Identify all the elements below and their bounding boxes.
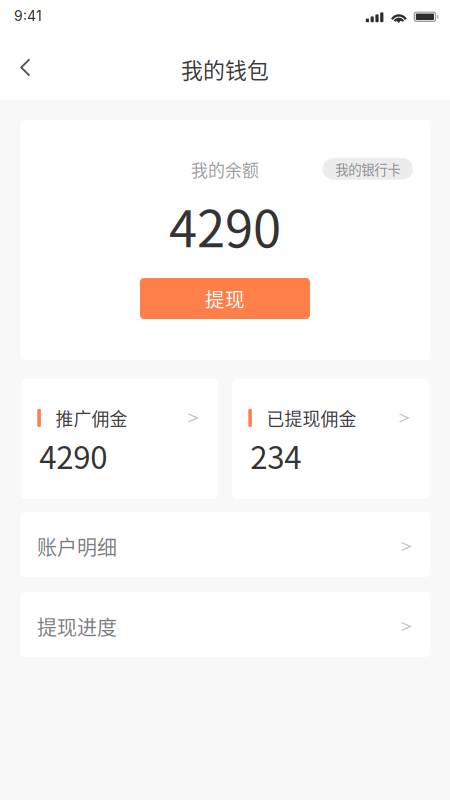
button[interactable]: 提现 bbox=[140, 278, 310, 319]
button[interactable]: 推广佣金 bbox=[21, 379, 218, 499]
button[interactable]: 我的银行卡 bbox=[322, 158, 413, 180]
button[interactable]: Back bbox=[0, 42, 51, 99]
staticText: 提现 bbox=[205, 284, 245, 313]
staticText: 234 bbox=[250, 433, 301, 478]
staticText: 我的钱包 bbox=[181, 53, 269, 85]
button[interactable]: 账户明细 bbox=[20, 512, 430, 577]
staticText: 9:41 bbox=[14, 7, 42, 24]
staticText: 提现进度 bbox=[37, 612, 117, 641]
staticText: 账户明细 bbox=[37, 532, 117, 561]
staticText: 4290 bbox=[39, 433, 107, 478]
staticText: 推广佣金 bbox=[55, 405, 127, 431]
staticText: 我的银行卡 bbox=[335, 159, 400, 179]
staticText: 4290 bbox=[169, 188, 281, 262]
staticText: 我的余额 bbox=[191, 157, 259, 181]
button[interactable]: 已提现佣金 bbox=[232, 379, 429, 499]
button[interactable]: 提现进度 bbox=[20, 592, 430, 657]
staticText: 已提现佣金 bbox=[266, 405, 356, 431]
